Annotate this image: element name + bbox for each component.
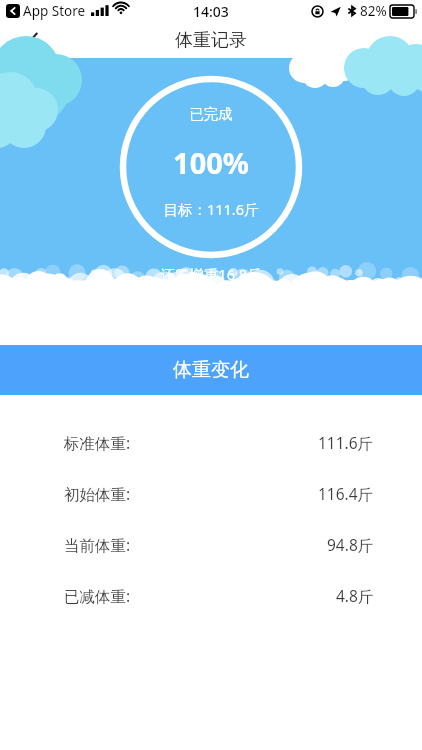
button[interactable]: 标准体重: bbox=[0, 417, 422, 468]
staticText: 14:03 bbox=[193, 2, 229, 21]
staticText: 体重变化 bbox=[173, 358, 249, 382]
staticText: 还需增重16.8斤 bbox=[160, 264, 262, 284]
staticText: 标准体重: bbox=[64, 432, 131, 453]
button[interactable]: 已减体重: bbox=[0, 570, 422, 621]
staticText: 100% bbox=[173, 143, 249, 182]
staticText: 初始体重: bbox=[64, 483, 131, 504]
staticText: 4.8斤 bbox=[336, 585, 374, 606]
button[interactable]: 初始体重: bbox=[0, 468, 422, 519]
staticText: 当前体重: bbox=[64, 534, 131, 555]
button[interactable]: Back bbox=[16, 22, 52, 58]
staticText: 94.8斤 bbox=[327, 534, 374, 555]
button[interactable]: 当前体重: bbox=[0, 519, 422, 570]
staticText: 已完成 bbox=[189, 105, 233, 123]
staticText: 111.6斤 bbox=[318, 432, 374, 453]
staticText: 体重记录 bbox=[175, 29, 247, 52]
button[interactable]: 体重变化 bbox=[0, 345, 422, 395]
staticText: App Store bbox=[23, 2, 86, 20]
staticText: 82% bbox=[360, 2, 387, 20]
staticText: 已减体重: bbox=[64, 585, 131, 606]
staticText: 目标：111.6斤 bbox=[163, 199, 259, 219]
staticText: 116.4斤 bbox=[318, 483, 374, 504]
